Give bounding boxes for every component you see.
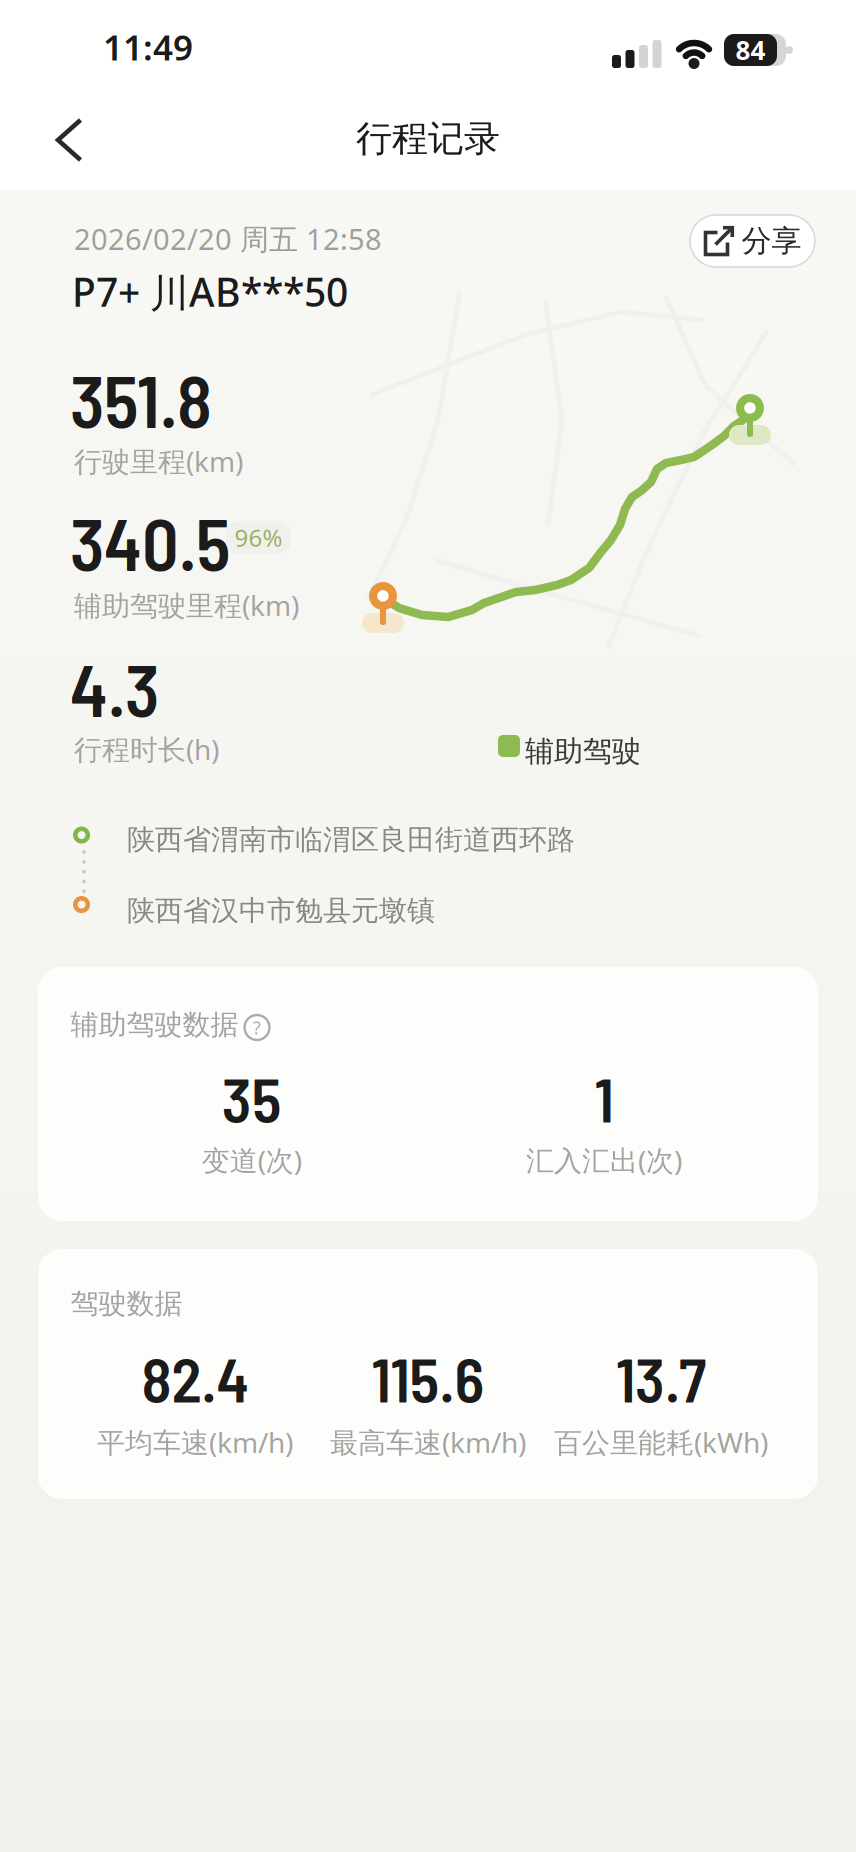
staticText: 辅助驾驶数据: [70, 1007, 238, 1042]
button[interactable]: ?: [244, 1015, 269, 1040]
staticText: 1: [594, 1061, 613, 1135]
staticText: 百公里能耗(kWh): [554, 1423, 768, 1461]
staticText: 351.8: [70, 356, 212, 442]
staticText: 分享: [741, 222, 801, 260]
staticText: 行程时长(h): [74, 730, 219, 768]
staticText: 平均车速(km/h): [97, 1423, 293, 1461]
button[interactable]: 分享: [690, 215, 815, 267]
staticText: 11:49: [103, 23, 193, 71]
staticText: 行程记录: [356, 116, 500, 161]
staticText: 行驶里程(km): [74, 442, 243, 480]
button[interactable]: [54, 117, 86, 163]
staticText: 辅助驾驶: [525, 733, 641, 769]
staticText: 340.5: [70, 499, 230, 585]
staticText: 4.3: [70, 645, 159, 731]
staticText: 13.7: [616, 1341, 706, 1415]
staticText: 35: [222, 1061, 282, 1135]
staticText: 96%: [234, 521, 282, 554]
staticText: 2026/02/20 周五 12:58: [74, 219, 382, 258]
staticText: 辅助驾驶里程(km): [74, 586, 299, 624]
staticText: P7+ 川AB***50: [72, 265, 348, 318]
staticText: 最高车速(km/h): [330, 1423, 526, 1461]
staticText: 驾驶数据: [70, 1286, 182, 1321]
staticText: 陕西省渭南市临渭区良田街道西环路: [127, 822, 575, 857]
staticText: 115.6: [371, 1341, 484, 1415]
staticText: 82.4: [141, 1341, 248, 1415]
staticText: 汇入汇出(次): [526, 1141, 682, 1179]
staticText: 变道(次): [202, 1141, 302, 1179]
staticText: 84: [735, 32, 765, 68]
staticText: ?: [253, 1015, 261, 1040]
staticText: 陕西省汉中市勉县元墩镇: [127, 893, 435, 928]
